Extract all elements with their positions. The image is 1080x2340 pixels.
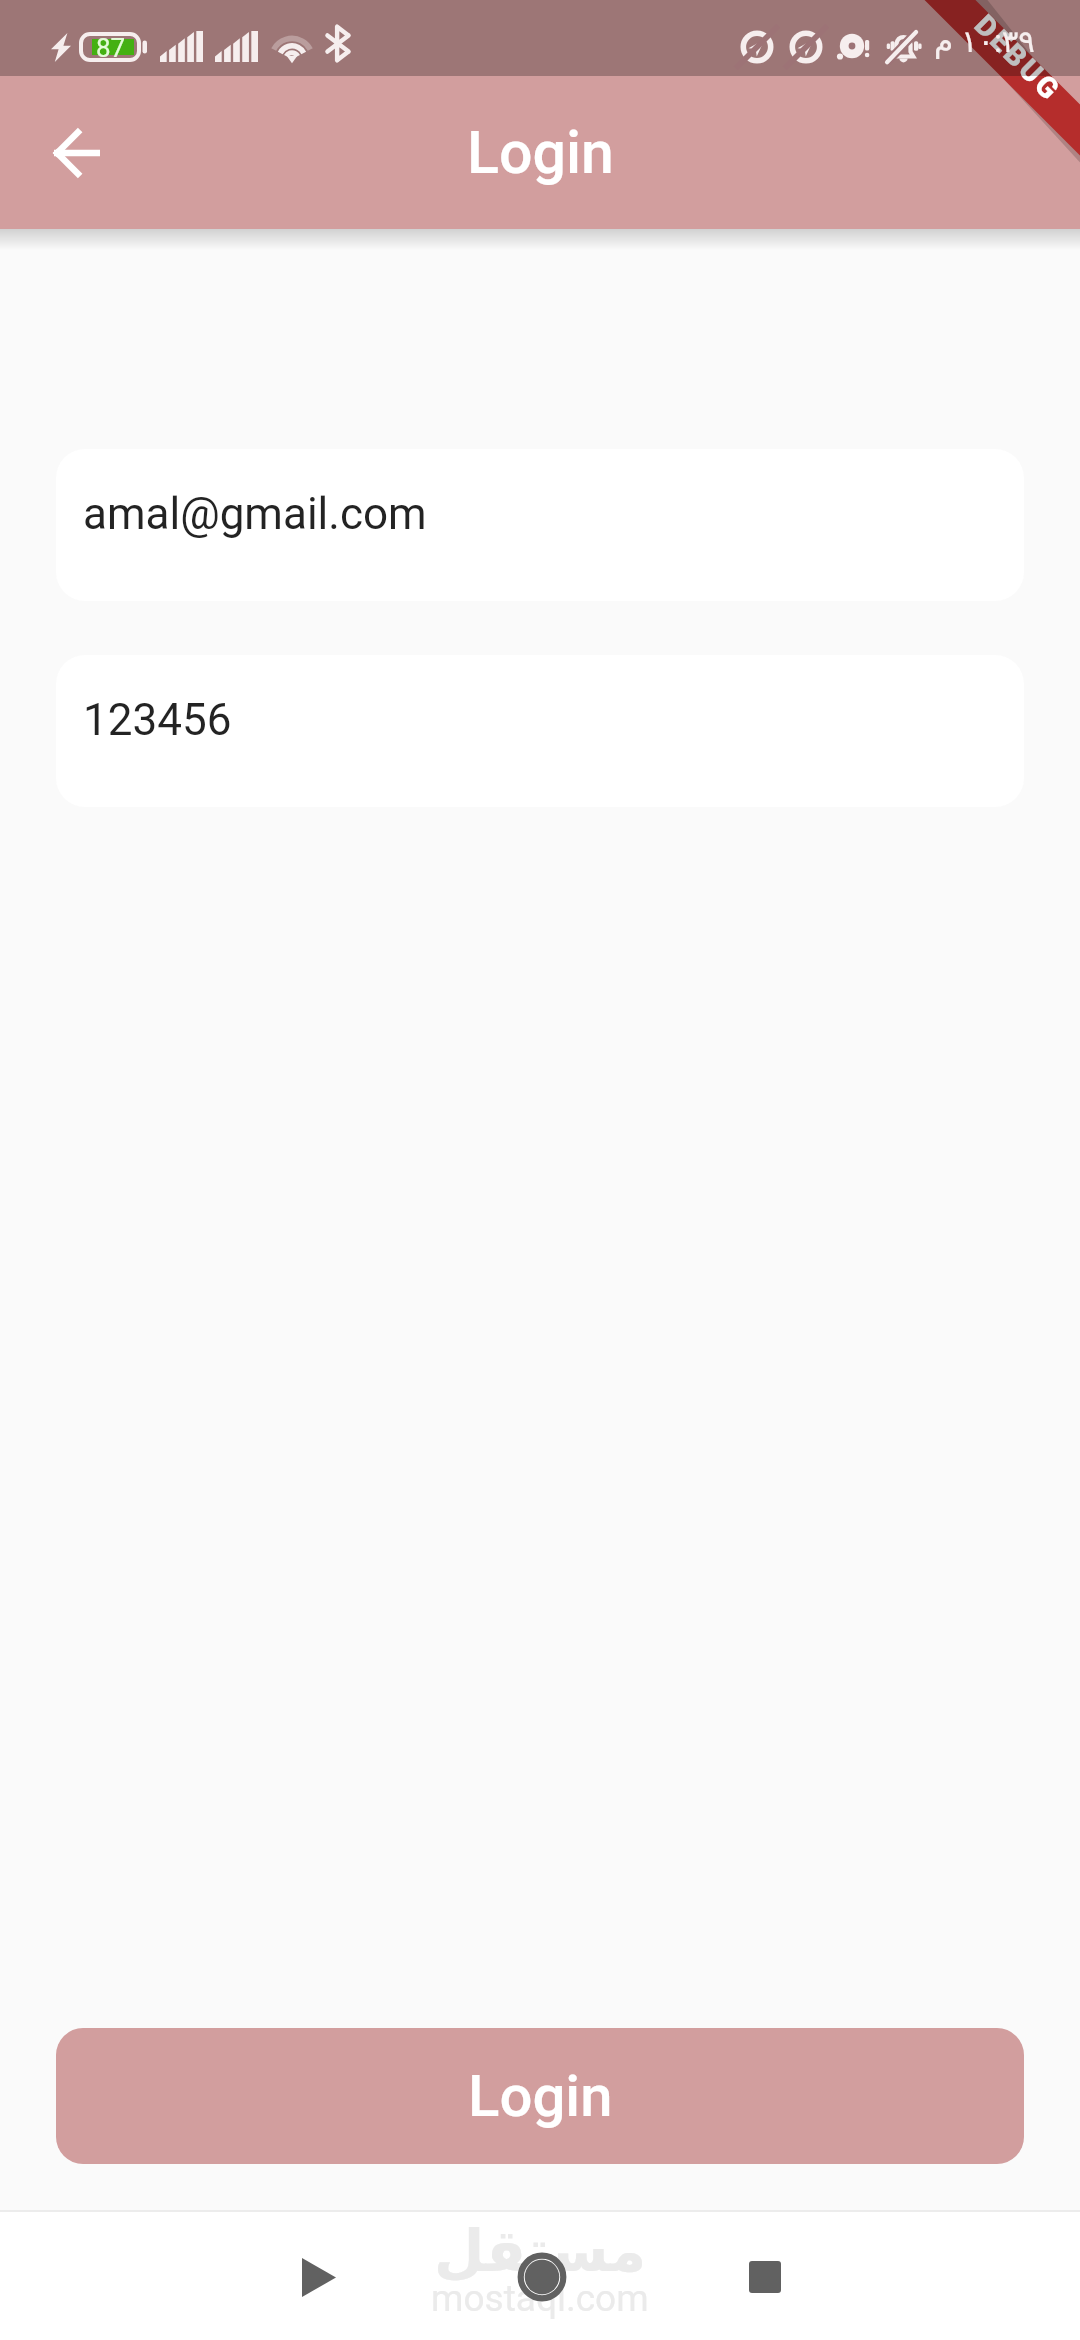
staticText: Login [468, 2062, 613, 2130]
staticText: amal@gmail.com [83, 488, 427, 540]
staticText: Login [467, 118, 614, 187]
staticText: 87 [96, 33, 126, 63]
staticText: mostaql.com [431, 2277, 649, 2320]
button[interactable]: 123456 [56, 655, 1024, 807]
button[interactable]: Back [259, 2217, 379, 2337]
staticText: ١٠:٣٩ م [934, 23, 1035, 59]
staticText: 123456 [83, 694, 232, 746]
button[interactable]: Recent apps [705, 2217, 825, 2337]
button[interactable]: Login [56, 2028, 1024, 2164]
staticText: مستقل [434, 2217, 647, 2285]
button[interactable]: Home [482, 2217, 602, 2337]
staticText: DEBUG [968, 8, 1068, 108]
button[interactable]: Back [28, 104, 126, 202]
button[interactable]: amal@gmail.com [56, 449, 1024, 601]
